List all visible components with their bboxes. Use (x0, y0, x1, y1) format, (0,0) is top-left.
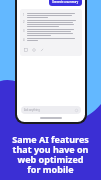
button[interactable]: Edit (39, 47, 44, 52)
staticText: Ask anything (24, 108, 40, 112)
staticText: Generate a summary (52, 0, 79, 4)
staticText: Same AI features that you have on web op… (6, 133, 95, 176)
button[interactable]: Generate a summary (49, 0, 82, 6)
staticText: 1 (23, 13, 25, 17)
staticText: 4 (23, 38, 25, 42)
button[interactable]: Ask anything (21, 106, 81, 114)
button[interactable]: Copy (23, 47, 28, 52)
staticText: 2 (23, 20, 25, 24)
button[interactable]: Like (31, 47, 36, 52)
button[interactable]: 1 (20, 9, 82, 56)
staticText: 3 (23, 29, 25, 33)
